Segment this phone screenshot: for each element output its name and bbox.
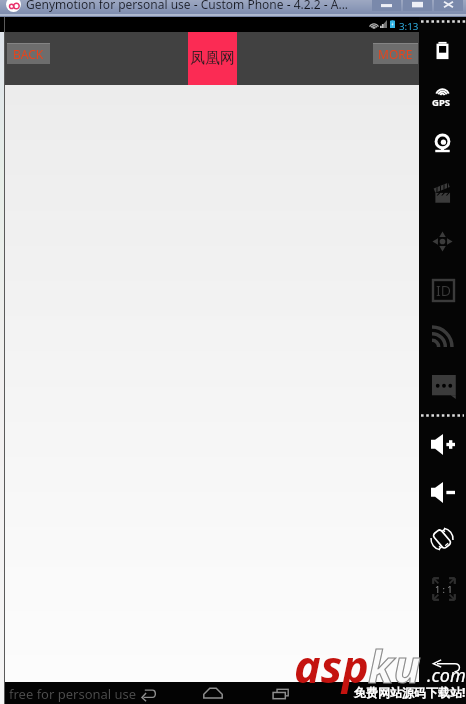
staticText: Genymotion for personal use - Custom Pho… bbox=[26, 0, 349, 12]
staticText: ku bbox=[368, 635, 421, 696]
staticText: BACK bbox=[13, 46, 44, 62]
staticText: 凤凰网 bbox=[190, 49, 235, 68]
staticText: 1 : 1 bbox=[435, 583, 453, 595]
button[interactable]: Messages bbox=[432, 375, 456, 399]
button[interactable]: Home bbox=[196, 682, 230, 704]
staticText: free for personal use bbox=[9, 685, 137, 703]
staticText: ku bbox=[368, 635, 421, 696]
staticText: 免费网站源码下载站! bbox=[354, 684, 466, 700]
button[interactable]: Back bbox=[131, 682, 165, 704]
button[interactable]: Minimize bbox=[372, 0, 401, 11]
button[interactable]: Maximize bbox=[403, 0, 432, 11]
button[interactable]: 凤凰网 bbox=[188, 32, 237, 85]
button[interactable]: Dpad bbox=[428, 227, 457, 256]
staticText: asp bbox=[294, 635, 369, 696]
button[interactable]: Camera bbox=[428, 129, 457, 158]
button[interactable]: Recents bbox=[264, 682, 298, 704]
button[interactable]: Volume up bbox=[431, 434, 455, 455]
staticText: GPS bbox=[432, 96, 451, 109]
button[interactable]: ID bbox=[432, 279, 455, 302]
button[interactable]: MORE bbox=[373, 43, 418, 64]
staticText: MORE bbox=[378, 46, 413, 62]
button[interactable]: Rotate bbox=[430, 527, 454, 551]
button[interactable]: Battery bbox=[428, 36, 457, 65]
button[interactable]: Volume down bbox=[431, 482, 455, 503]
button[interactable]: Record video bbox=[428, 179, 457, 208]
button[interactable]: GPS bbox=[428, 78, 457, 107]
staticText: .com bbox=[427, 663, 466, 688]
button[interactable]: Close bbox=[434, 0, 463, 11]
staticText: ID bbox=[436, 281, 451, 300]
button[interactable]: BACK bbox=[7, 43, 50, 64]
button[interactable]: Network bbox=[432, 327, 452, 347]
button[interactable]: Scale 1:1 bbox=[432, 577, 456, 601]
staticText: 3:13 bbox=[399, 20, 419, 32]
